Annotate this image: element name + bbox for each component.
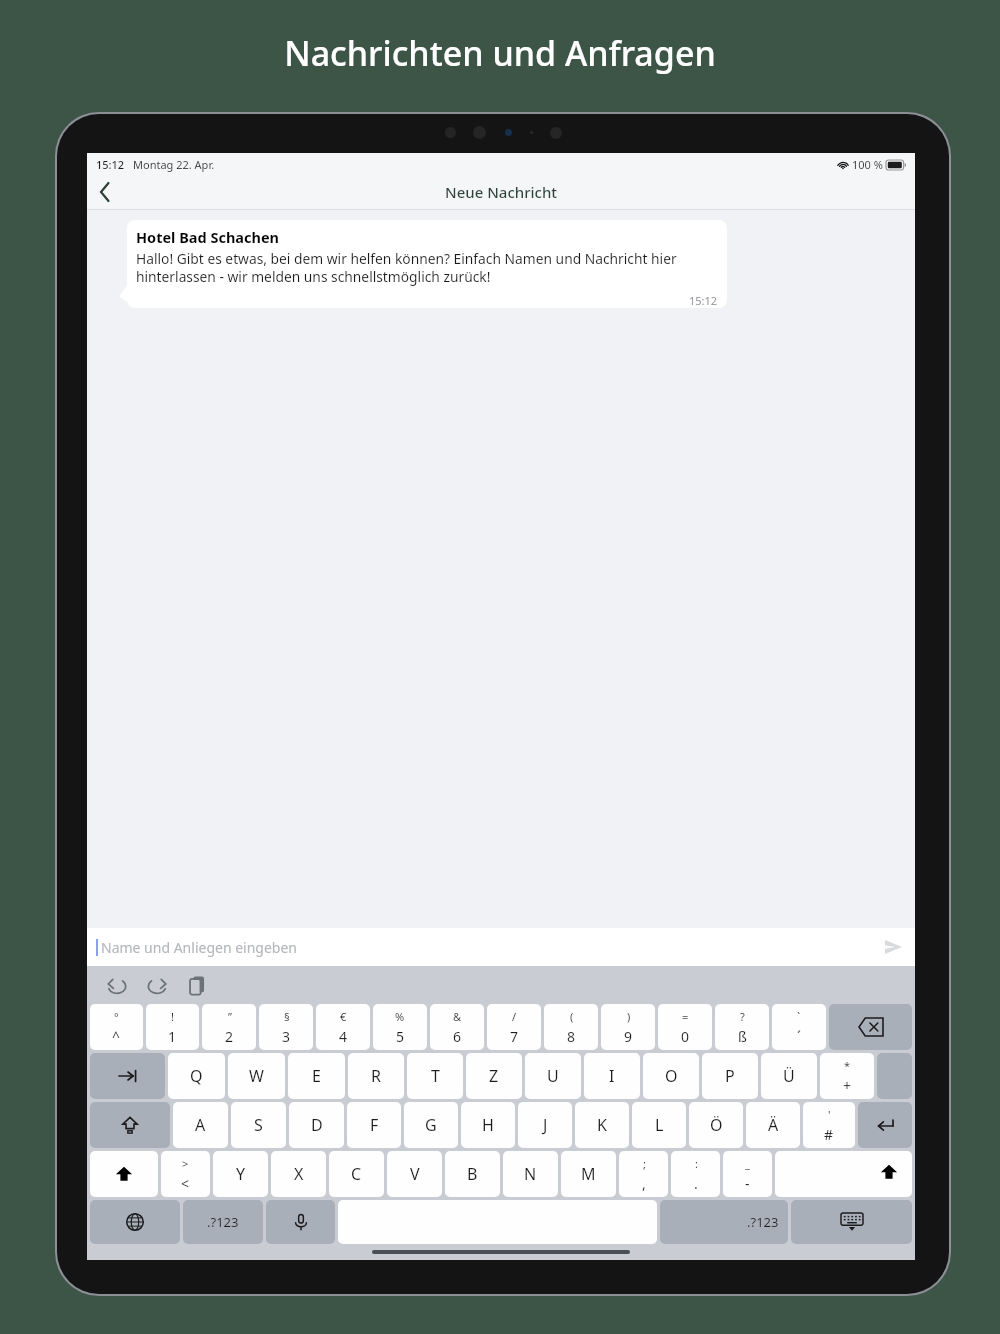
button[interactable]: * (820, 1053, 874, 1099)
button[interactable]: Ü (761, 1053, 817, 1099)
button[interactable] (877, 1053, 912, 1099)
staticText: - (745, 1174, 750, 1193)
button[interactable]: C (329, 1151, 384, 1197)
staticText: 6 (453, 1027, 462, 1046)
button[interactable]: ; (619, 1151, 668, 1197)
staticText: .?123 (207, 1213, 239, 1231)
button[interactable]: W (228, 1053, 285, 1099)
button[interactable]: Ö (689, 1102, 743, 1148)
staticText: P (725, 1065, 735, 1087)
button[interactable]: O (643, 1053, 699, 1099)
button[interactable]: ) (601, 1004, 655, 1050)
button[interactable]: : (671, 1151, 720, 1197)
staticText: 2 (225, 1027, 234, 1046)
button[interactable]: M (561, 1151, 616, 1197)
staticText: ` (797, 1009, 801, 1024)
button[interactable]: .?123 (660, 1200, 788, 1244)
staticText: ) (627, 1009, 631, 1024)
button[interactable]: ( (544, 1004, 598, 1050)
button[interactable]: Q (168, 1053, 225, 1099)
button[interactable]: V (387, 1151, 442, 1197)
button[interactable]: E (288, 1053, 345, 1099)
button[interactable]: K (575, 1102, 629, 1148)
button[interactable]: Löschen (829, 1004, 912, 1050)
button[interactable]: S (231, 1102, 286, 1148)
staticText: T (431, 1065, 440, 1087)
staticText: U (547, 1065, 559, 1087)
staticText: 4 (339, 1027, 348, 1046)
button[interactable]: D (289, 1102, 344, 1148)
button[interactable]: Z (466, 1053, 522, 1099)
button[interactable]: ” (202, 1004, 256, 1050)
staticText: Ä (768, 1114, 779, 1136)
staticText: # (824, 1125, 834, 1144)
button[interactable]: Eingabe (858, 1102, 912, 1148)
staticText: / (512, 1009, 517, 1024)
button[interactable]: / (487, 1004, 541, 1050)
staticText: * (844, 1058, 851, 1073)
button[interactable]: R (348, 1053, 404, 1099)
button[interactable]: ! (146, 1004, 199, 1050)
button[interactable]: Umschalt (90, 1151, 158, 1197)
button[interactable]: I (584, 1053, 640, 1099)
button[interactable]: U (525, 1053, 581, 1099)
button[interactable]: ' (803, 1102, 855, 1148)
button[interactable]: A (173, 1102, 228, 1148)
button[interactable]: § (259, 1004, 313, 1050)
button[interactable]: G (404, 1102, 458, 1148)
button[interactable]: B (445, 1151, 500, 1197)
button[interactable]: F (347, 1102, 401, 1148)
button[interactable]: ` (772, 1004, 826, 1050)
button[interactable]: Umschalt rechts (775, 1151, 912, 1197)
staticText: ´ (797, 1027, 801, 1046)
button[interactable]: Zurück (87, 175, 123, 209)
button[interactable]: Tabulator (90, 1053, 165, 1099)
staticText: 0 (681, 1027, 690, 1046)
button[interactable]: Einfügen (185, 971, 213, 999)
button[interactable]: P (702, 1053, 758, 1099)
button[interactable]: _ (723, 1151, 772, 1197)
button[interactable]: Sprache (90, 1200, 180, 1244)
button[interactable]: = (658, 1004, 712, 1050)
button[interactable]: Senden (880, 934, 906, 960)
button[interactable]: € (316, 1004, 370, 1050)
button[interactable]: Rückgängig (105, 971, 133, 999)
staticText: % (395, 1009, 405, 1024)
staticText: > (182, 1156, 189, 1171)
button[interactable]: L (632, 1102, 686, 1148)
staticText: 1 (168, 1027, 177, 1046)
staticText: ( (570, 1009, 574, 1024)
button[interactable]: & (430, 1004, 484, 1050)
button[interactable]: X (271, 1151, 326, 1197)
button[interactable]: % (373, 1004, 427, 1050)
staticText: 5 (396, 1027, 405, 1046)
button[interactable]: > (161, 1151, 210, 1197)
button[interactable]: ? (715, 1004, 769, 1050)
button[interactable]: Feststelltaste (90, 1102, 170, 1148)
button[interactable]: Ä (746, 1102, 800, 1148)
button[interactable]: N (503, 1151, 558, 1197)
button[interactable]: .?123 (183, 1200, 263, 1244)
button[interactable]: Hotel Bad Schachen (127, 220, 727, 308)
staticText: N (524, 1163, 537, 1185)
button[interactable]: Y (213, 1151, 268, 1197)
button[interactable]: H (461, 1102, 515, 1148)
staticText: Montag 22. Apr. (133, 157, 215, 172)
button[interactable]: T (407, 1053, 463, 1099)
button[interactable]: ° (90, 1004, 143, 1050)
button[interactable]: Diktat (266, 1200, 335, 1244)
staticText: Ö (710, 1114, 723, 1136)
staticText: ? (740, 1009, 745, 1024)
staticText: H (482, 1114, 494, 1136)
staticText: ! (171, 1009, 174, 1024)
button[interactable]: Name und Anliegen eingeben (87, 928, 915, 966)
staticText: ” (228, 1009, 232, 1024)
staticText: .?123 (747, 1213, 779, 1231)
button[interactable]: Tastatur ausblenden (791, 1200, 912, 1244)
staticText: Q (190, 1065, 203, 1087)
button[interactable]: J (518, 1102, 572, 1148)
staticText: = (682, 1009, 689, 1024)
button[interactable]: Wiederholen (145, 971, 173, 999)
staticText: M (581, 1163, 596, 1185)
